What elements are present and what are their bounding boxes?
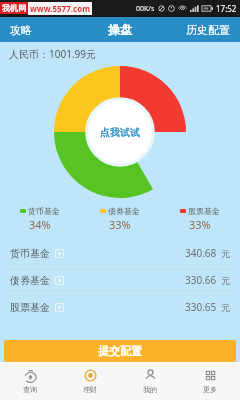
staticText: 人民币：1001.99元 bbox=[9, 47, 96, 61]
button[interactable]: 我的 bbox=[120, 362, 180, 400]
staticText: 17:52 bbox=[216, 3, 237, 14]
staticText: 货币基金 bbox=[28, 206, 60, 216]
staticText: 我机网 bbox=[2, 3, 26, 13]
staticText: 340.68 bbox=[185, 246, 217, 260]
staticText: 债券基金 bbox=[10, 274, 50, 287]
staticText: 攻略 bbox=[10, 23, 32, 37]
button[interactable]: 操盘 bbox=[80, 17, 160, 42]
staticText: 股票基金 bbox=[188, 206, 220, 216]
staticText: www.5577.com bbox=[30, 3, 90, 14]
staticText: 债券基金 bbox=[108, 206, 140, 216]
button[interactable]: 货币基金 bbox=[0, 240, 240, 266]
staticText: 股票基金 bbox=[10, 301, 50, 314]
staticText: 33% bbox=[109, 217, 131, 232]
staticText: 查询 bbox=[23, 385, 37, 394]
staticText: 操盘 bbox=[108, 22, 132, 37]
button[interactable]: 点我试试 bbox=[52, 64, 188, 200]
button[interactable]: 提交配置 bbox=[4, 340, 236, 362]
staticText: 货币基金 bbox=[10, 247, 50, 260]
other: 详情 bbox=[55, 276, 64, 285]
staticText: 330.65 bbox=[185, 300, 217, 314]
button[interactable]: 股票基金 bbox=[160, 206, 240, 232]
staticText: 元 bbox=[221, 302, 230, 313]
button[interactable]: 历史配置 bbox=[160, 17, 240, 42]
button[interactable]: 债券基金 bbox=[80, 206, 160, 232]
staticText: 历史配置 bbox=[186, 23, 230, 37]
other: 详情 bbox=[55, 303, 64, 312]
staticText: 元 bbox=[221, 248, 230, 259]
button[interactable]: 货币基金 bbox=[0, 206, 80, 232]
staticText: 理财 bbox=[83, 385, 97, 394]
staticText: 我的 bbox=[143, 385, 157, 394]
button[interactable]: 攻略 bbox=[0, 17, 80, 42]
staticText: 点我试试 bbox=[100, 126, 140, 139]
staticText: 提交配置 bbox=[98, 344, 142, 358]
button[interactable]: 查询 bbox=[0, 362, 60, 400]
staticText: 33% bbox=[189, 217, 211, 232]
staticText: 330.66 bbox=[185, 273, 217, 287]
staticText: 00K/s bbox=[136, 4, 155, 14]
other: 详情 bbox=[55, 249, 64, 258]
staticText: 元 bbox=[221, 275, 230, 286]
button[interactable]: 理财 bbox=[60, 362, 120, 400]
button[interactable]: 更多 bbox=[180, 362, 240, 400]
staticText: 34% bbox=[29, 217, 51, 232]
staticText: 更多 bbox=[203, 385, 217, 394]
button[interactable]: 债券基金 bbox=[0, 267, 240, 293]
button[interactable]: 股票基金 bbox=[0, 294, 240, 320]
